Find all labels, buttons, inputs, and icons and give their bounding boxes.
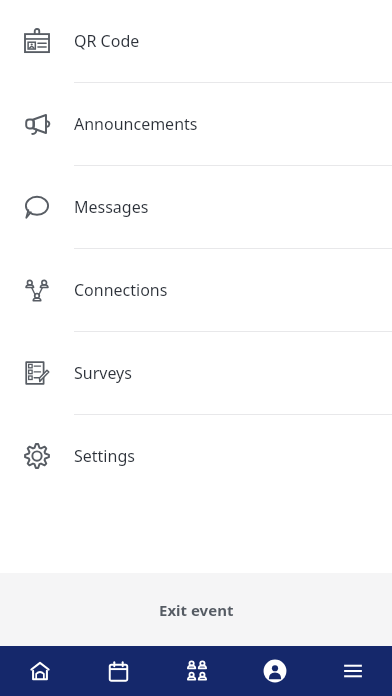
button[interactable]: Home	[0, 646, 79, 696]
button[interactable]: Exit event	[0, 573, 392, 646]
button[interactable]: Connections	[0, 249, 392, 331]
button[interactable]: Announcements	[0, 83, 392, 165]
staticText: Surveys	[74, 362, 132, 384]
staticText: Announcements	[74, 113, 198, 135]
staticText: QR Code	[74, 30, 140, 52]
button[interactable]: Agenda	[79, 646, 158, 696]
button[interactable]: Surveys	[0, 332, 392, 414]
button[interactable]: Messages	[0, 166, 392, 248]
staticText: Connections	[74, 279, 168, 301]
staticText: Exit event	[159, 600, 234, 620]
button[interactable]: Settings	[0, 415, 392, 497]
staticText: Messages	[74, 196, 149, 218]
button[interactable]: People	[158, 646, 236, 696]
button[interactable]: QR Code	[0, 0, 392, 82]
button[interactable]: Profile	[236, 646, 314, 696]
button[interactable]: Menu	[314, 646, 392, 696]
staticText: Settings	[74, 445, 135, 467]
